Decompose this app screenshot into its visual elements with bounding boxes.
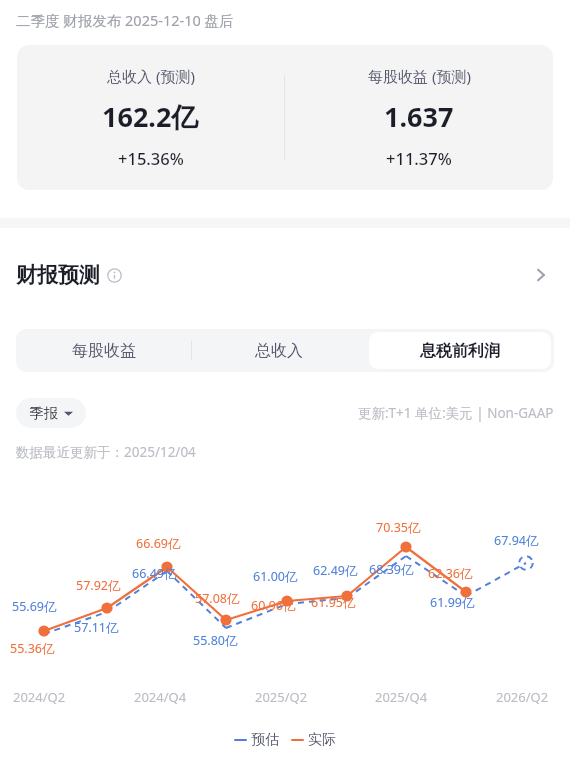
button[interactable]: 总收入 xyxy=(195,332,363,369)
staticText: 1.637 xyxy=(384,98,454,135)
button[interactable]: 息税前利润 xyxy=(369,332,551,369)
staticText: 总收入 xyxy=(255,341,303,361)
staticText: 68.39亿 xyxy=(369,561,414,578)
staticText: 55.36亿 xyxy=(10,640,55,657)
staticText: 57.92亿 xyxy=(76,577,121,594)
button[interactable]: 总收入 (预测) xyxy=(17,45,553,190)
staticText: 60.96亿 xyxy=(251,597,296,614)
staticText: 162.2亿 xyxy=(102,98,199,135)
staticText: 2025/Q2 xyxy=(255,688,308,706)
staticText: 55.80亿 xyxy=(193,632,238,649)
other: 查看更多 xyxy=(530,264,552,286)
staticText: 二季度 财报发布 2025-12-10 盘后 xyxy=(16,10,234,30)
staticText: 61.95亿 xyxy=(311,594,356,611)
staticText: 预估 xyxy=(251,731,279,749)
staticText: 2026/Q2 xyxy=(496,688,549,706)
staticText: 更新:T+1 单位:美元 | Non-GAAP xyxy=(358,404,554,422)
staticText: 61.00亿 xyxy=(253,568,298,585)
staticText: 季报 xyxy=(29,404,58,422)
staticText: 每股收益 (预测) xyxy=(368,66,471,86)
staticText: 62.36亿 xyxy=(428,565,473,582)
staticText: 66.49亿 xyxy=(132,565,177,582)
staticText: +15.36% xyxy=(118,147,184,169)
staticText: 每股收益 xyxy=(72,341,136,361)
staticText: 61.99亿 xyxy=(430,594,475,611)
staticText: 55.69亿 xyxy=(12,598,57,615)
staticText: 数据最近更新于：2025/12/04 xyxy=(16,443,196,461)
button[interactable]: 每股收益 xyxy=(19,332,188,369)
staticText: 70.35亿 xyxy=(376,519,421,536)
staticText: 2024/Q4 xyxy=(134,688,187,706)
staticText: 57.08亿 xyxy=(195,590,240,607)
staticText: 2024/Q2 xyxy=(13,688,66,706)
button[interactable]: 季报 xyxy=(16,398,86,428)
staticText: 财报预测 xyxy=(16,262,100,288)
staticText: +11.37% xyxy=(386,147,452,169)
staticText: 66.69亿 xyxy=(136,535,181,552)
staticText: 67.94亿 xyxy=(494,532,539,549)
staticText: 总收入 (预测) xyxy=(107,66,195,86)
staticText: 息税前利润 xyxy=(420,341,500,361)
staticText: 57.11亿 xyxy=(74,619,119,636)
staticText: 实际 xyxy=(308,731,336,749)
staticText: 2025/Q4 xyxy=(375,688,428,706)
button[interactable]: 财报预测 xyxy=(0,255,570,295)
staticText: 62.49亿 xyxy=(313,562,358,579)
